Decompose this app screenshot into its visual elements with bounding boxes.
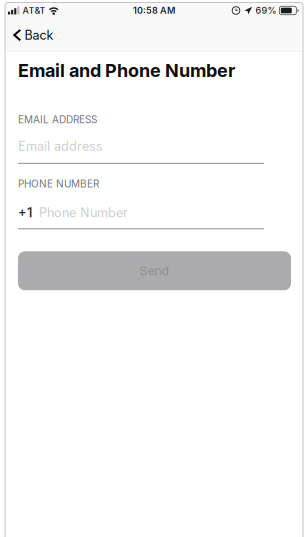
button[interactable]: Send xyxy=(18,251,291,290)
staticText: Email address xyxy=(18,138,103,154)
staticText: AT&T xyxy=(22,5,45,16)
staticText: EMAIL ADDRESS xyxy=(18,113,97,125)
staticText: Back xyxy=(25,27,54,43)
staticText: +1 xyxy=(18,205,32,220)
staticText: Email and Phone Number xyxy=(18,60,235,81)
staticText: PHONE NUMBER xyxy=(18,178,99,190)
staticText: 69% xyxy=(255,5,276,16)
staticText: Phone Number xyxy=(39,205,128,220)
staticText: Send xyxy=(139,263,169,278)
button[interactable]: Back xyxy=(5,18,303,52)
staticText: 10:58 AM xyxy=(133,5,175,16)
